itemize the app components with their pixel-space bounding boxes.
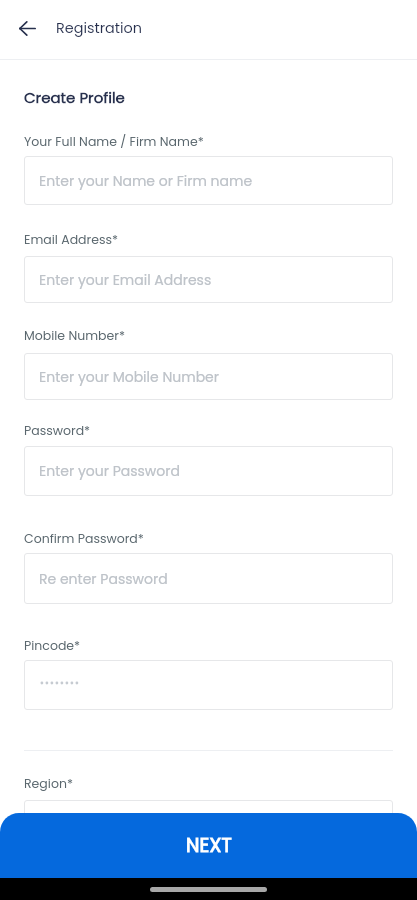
button[interactable]: Enter your Password — [24, 446, 393, 496]
staticText: Email Address* — [24, 231, 119, 248]
button[interactable]: Enter your Name or Firm name — [24, 156, 393, 205]
staticText: Your Full Name / Firm Name* — [24, 133, 204, 150]
staticText: Pincode* — [24, 637, 81, 654]
button[interactable]: Re enter Password — [24, 553, 393, 604]
staticText: Confirm Password* — [24, 530, 144, 547]
staticText: Mobile Number* — [24, 327, 126, 344]
staticText: Enter your Password — [39, 461, 180, 481]
staticText: Password* — [24, 422, 91, 439]
button[interactable]: Enter your Email Address — [24, 256, 393, 303]
staticText: NEXT — [186, 832, 232, 859]
staticText: Create Profile — [24, 87, 125, 108]
staticText: Enter your Name or Firm name — [39, 171, 253, 191]
button[interactable]: Enter your Mobile Number — [24, 353, 393, 400]
staticText: Enter your Mobile Number — [39, 367, 220, 387]
staticText: Region* — [24, 775, 73, 792]
staticText: Enter your Email Address — [39, 270, 212, 290]
staticText: Re enter Password — [39, 569, 168, 589]
button[interactable] — [24, 800, 393, 850]
button[interactable]: NEXT — [0, 813, 417, 878]
button[interactable] — [24, 660, 393, 710]
button[interactable]: Back — [13, 14, 41, 42]
staticText: Registration — [56, 18, 142, 38]
